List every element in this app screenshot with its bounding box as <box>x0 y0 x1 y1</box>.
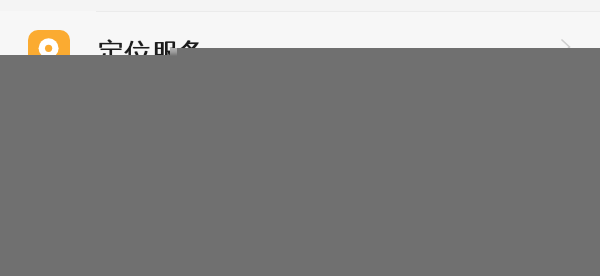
button[interactable]: 定位服务 <box>0 11 600 83</box>
staticText: 定位服务 <box>98 36 206 70</box>
button[interactable]: Open 定位服务 <box>554 35 578 59</box>
staticText: 定位服务 <box>97 36 205 70</box>
